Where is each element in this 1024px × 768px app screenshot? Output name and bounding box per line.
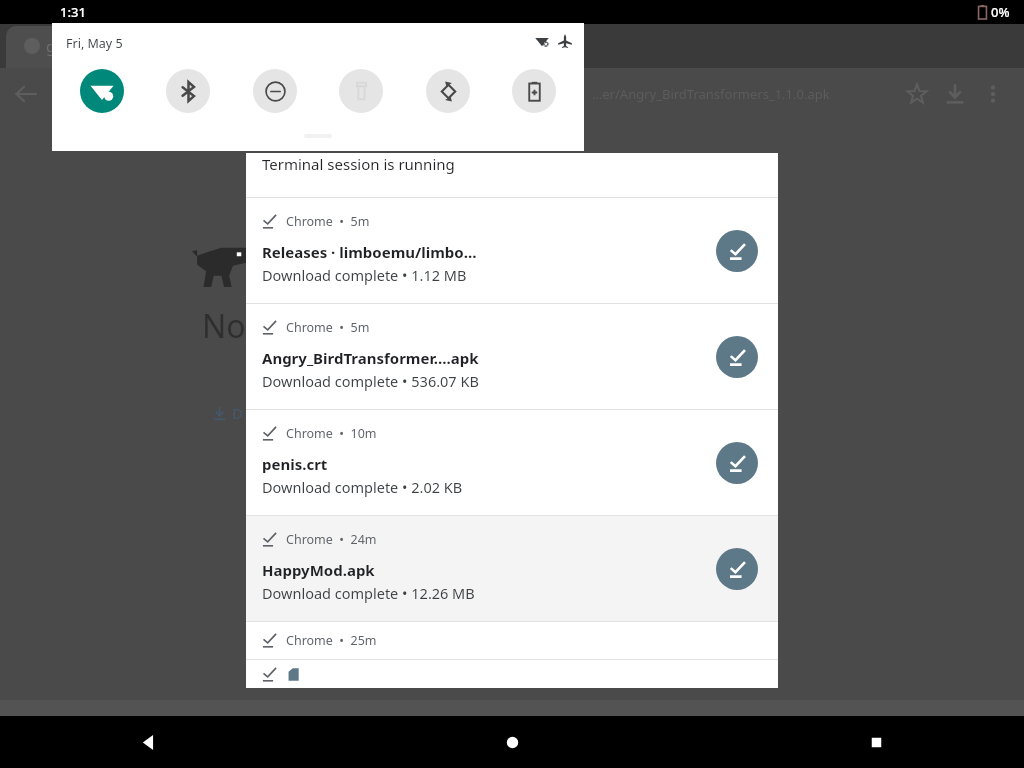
staticText: Releases · limboemu/limbo…: [262, 242, 477, 262]
staticText: Chrome • 24m: [286, 531, 377, 548]
staticText: Download complete • 2.02 KB: [262, 477, 463, 497]
button[interactable]: Open download: [716, 548, 758, 590]
staticText: Fri, May 5: [66, 35, 123, 52]
button[interactable]: Terminal session is running: [246, 153, 778, 197]
button[interactable]: Home: [486, 716, 538, 768]
button[interactable]: Open download: [716, 442, 758, 484]
staticText: Download complete • 12.26 MB: [262, 583, 475, 603]
button[interactable]: [246, 660, 778, 688]
button[interactable]: Chrome • 5m: [246, 198, 778, 303]
button[interactable]: Flashlight: [339, 69, 383, 113]
staticText: Download complete • 1.12 MB: [262, 265, 467, 285]
staticText: Download complete • 536.07 KB: [262, 371, 479, 391]
button[interactable]: Back: [12, 80, 40, 108]
button[interactable]: Wi-Fi off: [80, 69, 124, 113]
staticText: No: [202, 304, 246, 348]
staticText: Chrome • 5m: [286, 319, 370, 336]
staticText: D: [232, 403, 243, 423]
button[interactable]: Open download: [716, 336, 758, 378]
staticText: Angry_BirdTransformer….apk: [262, 348, 479, 368]
button[interactable]: Do not disturb: [253, 69, 297, 113]
button[interactable]: Battery saver: [512, 69, 556, 113]
staticText: Chrome • 5m: [286, 213, 370, 230]
staticText: penis.crt: [262, 454, 328, 474]
staticText: 0%: [991, 3, 1010, 21]
staticText: g: [46, 36, 56, 56]
button[interactable]: Bookmark: [898, 75, 936, 113]
button[interactable]: Bluetooth: [166, 69, 210, 113]
staticText: HappyMod.apk: [262, 560, 375, 580]
button[interactable]: More options: [974, 75, 1012, 113]
button[interactable]: Downloads: [936, 75, 974, 113]
button[interactable]: Chrome • 25m: [246, 622, 778, 659]
button[interactable]: Chrome • 24m: [246, 516, 778, 621]
button[interactable]: Chrome • 10m: [246, 410, 778, 515]
button[interactable]: Recents: [850, 716, 902, 768]
staticText: …er/Angry_BirdTransformers_1.1.0.apk: [592, 85, 830, 103]
staticText: 1:31: [60, 3, 86, 21]
staticText: Chrome • 25m: [286, 632, 377, 649]
button[interactable]: Auto rotate: [426, 69, 470, 113]
button[interactable]: Open download: [716, 230, 758, 272]
button[interactable]: Back: [122, 716, 174, 768]
staticText: Terminal session is running: [262, 154, 455, 174]
button[interactable]: Chrome • 5m: [246, 304, 778, 409]
staticText: Chrome • 10m: [286, 425, 377, 442]
